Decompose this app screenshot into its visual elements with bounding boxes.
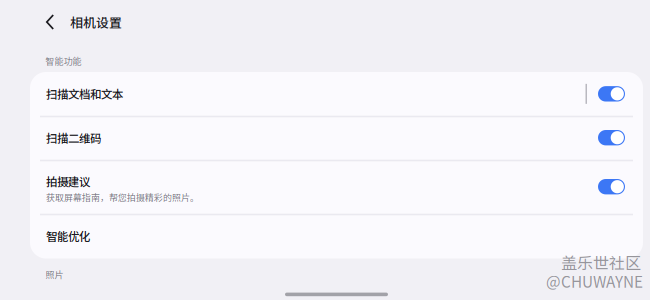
staticText: @CHUWAYNE [546, 270, 643, 292]
staticText: 扫描二维码 [46, 129, 101, 146]
button[interactable]: 拍摄建议 [30, 160, 643, 214]
staticText: 扫描文档和文本 [46, 85, 123, 102]
staticText: 盖乐世社区 [561, 250, 641, 274]
staticText: 照片 [45, 268, 63, 281]
button[interactable]: 扫描二维码 [598, 130, 625, 145]
button[interactable]: 扫描二维码 [30, 116, 643, 160]
button[interactable]: 拍摄建议 [598, 179, 625, 194]
button[interactable]: Back [37, 5, 63, 39]
staticText: 获取屏幕指南，帮您拍摄精彩的照片。 [46, 190, 199, 203]
button[interactable]: 扫描文档和文本 [30, 72, 643, 116]
staticText: 拍摄建议 [46, 173, 90, 189]
staticText: 智能功能 [45, 54, 81, 67]
staticText: 相机设置 [70, 13, 122, 31]
button[interactable]: 相机设置 [63, 7, 122, 37]
staticText: 智能优化 [46, 228, 90, 244]
button[interactable]: 扫描文档和文本 [598, 86, 625, 101]
button[interactable]: 智能优化 [30, 214, 643, 258]
